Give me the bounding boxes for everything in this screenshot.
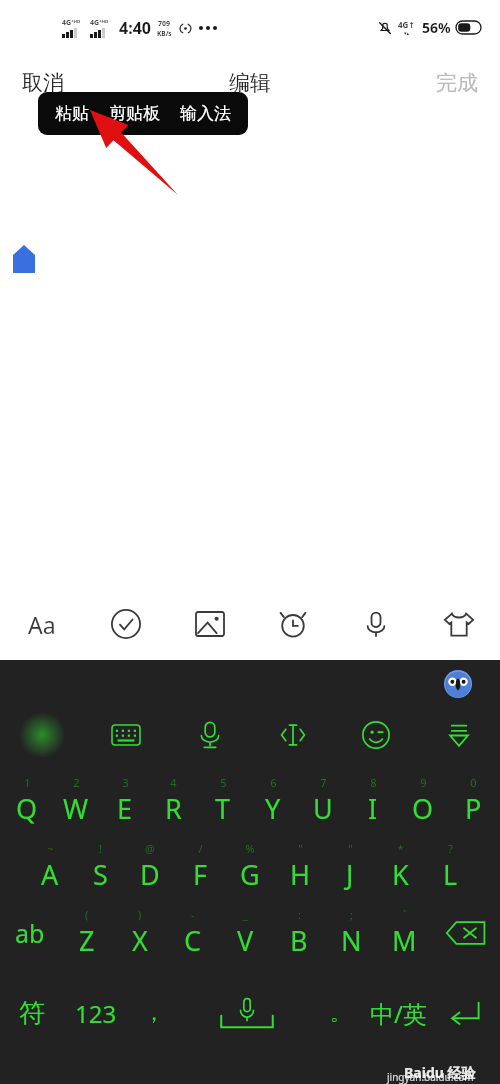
staticText: 2 xyxy=(73,775,80,790)
staticText: Q xyxy=(16,790,38,827)
staticText: Aa xyxy=(28,609,56,640)
button[interactable]: Checklist xyxy=(84,588,168,660)
button[interactable]: ， xyxy=(128,966,180,1060)
staticText: 3 xyxy=(122,775,129,790)
button[interactable]: 中/英 xyxy=(366,966,430,1060)
button[interactable]: 123 xyxy=(64,966,128,1060)
button[interactable]: 输入法 xyxy=(177,103,234,124)
button[interactable]: 3 xyxy=(100,768,149,834)
button[interactable]: 。 xyxy=(314,966,366,1060)
button[interactable]: Text format xyxy=(0,588,84,660)
button[interactable]: ( xyxy=(60,900,113,966)
staticText: 取消 xyxy=(22,70,64,96)
staticText: X xyxy=(132,922,148,959)
button[interactable]: ) xyxy=(113,900,166,966)
button[interactable]: * xyxy=(375,834,425,900)
staticText: : xyxy=(298,907,301,922)
button[interactable]: % xyxy=(225,834,275,900)
staticText: 4 xyxy=(170,775,177,790)
staticText: S xyxy=(93,856,108,893)
staticText: Y xyxy=(265,790,281,827)
staticText: U xyxy=(313,790,333,827)
staticText: L xyxy=(443,856,458,893)
button[interactable]: 9 xyxy=(398,768,448,834)
staticText: D xyxy=(140,856,160,893)
button[interactable]: Space xyxy=(180,966,314,1060)
staticText: ~ xyxy=(47,841,54,856)
button[interactable]: 2 xyxy=(51,768,100,834)
staticText: V xyxy=(237,922,254,959)
staticText: P xyxy=(465,790,482,827)
button[interactable]: 剪贴板 xyxy=(106,103,163,124)
button[interactable]: - xyxy=(166,900,219,966)
staticText: T xyxy=(215,790,231,827)
staticText: _ xyxy=(243,907,248,922)
button[interactable]: Baidu input xyxy=(0,702,84,768)
button[interactable]: 粘贴 xyxy=(52,103,92,124)
staticText: O xyxy=(412,790,434,827)
staticText: / xyxy=(198,841,203,856)
staticText: 7 xyxy=(320,775,327,790)
button[interactable]: 4 xyxy=(149,768,198,834)
button[interactable]: 6 xyxy=(248,768,298,834)
button[interactable]: 5 xyxy=(198,768,248,834)
button[interactable]: ! xyxy=(75,834,125,900)
button[interactable]: @ xyxy=(125,834,175,900)
button[interactable]: " xyxy=(325,834,375,900)
button[interactable]: 完成 xyxy=(422,64,500,102)
button[interactable]: : xyxy=(272,900,325,966)
staticText: 0 xyxy=(470,775,477,790)
button[interactable]: ? xyxy=(425,834,475,900)
button[interactable]: 7 xyxy=(298,768,348,834)
staticText: 中/英 xyxy=(370,997,427,1030)
button[interactable]: Emoji xyxy=(334,702,417,768)
staticText: E xyxy=(117,790,133,827)
staticText: ? xyxy=(448,841,453,856)
button[interactable]: 0 xyxy=(448,768,498,834)
button[interactable]: ab xyxy=(0,900,60,966)
staticText: B xyxy=(290,922,308,959)
staticText: 4G⁺ᴴᴰ xyxy=(62,18,81,28)
staticText: 709 xyxy=(158,19,171,29)
staticText: ， xyxy=(143,999,165,1027)
staticText: R xyxy=(165,790,182,827)
staticText: F xyxy=(193,856,208,893)
button[interactable]: 符 xyxy=(0,966,64,1060)
button[interactable]: / xyxy=(175,834,225,900)
staticText: 剪贴板 xyxy=(109,103,160,124)
button[interactable]: Image xyxy=(168,588,251,660)
button[interactable]: " xyxy=(275,834,325,900)
button[interactable]: ~ xyxy=(25,834,75,900)
staticText: @ xyxy=(145,841,155,856)
staticText: C xyxy=(184,922,202,959)
button[interactable]: Voice xyxy=(334,588,417,660)
staticText: 4G⁺ᴴᴰ xyxy=(90,18,109,28)
staticText: Baidu 经验 xyxy=(404,1063,476,1082)
button[interactable]: Backspace xyxy=(431,900,500,966)
button[interactable]: Reminder xyxy=(251,588,334,660)
button[interactable]: Cursor xyxy=(251,702,334,768)
button[interactable]: Enter xyxy=(430,966,500,1060)
staticText: 编辑 xyxy=(229,70,271,96)
button[interactable]: ; xyxy=(325,900,378,966)
staticText: M xyxy=(392,922,417,959)
staticText: 56% xyxy=(422,18,451,37)
button[interactable]: Assistant avatar xyxy=(444,670,472,698)
button[interactable]: 1 xyxy=(2,768,51,834)
button[interactable]: 8 xyxy=(348,768,398,834)
button[interactable]: Style xyxy=(417,588,500,660)
staticText: 6 xyxy=(270,775,277,790)
button[interactable]: Hide keyboard xyxy=(417,702,500,768)
button[interactable]: Voice input xyxy=(168,702,251,768)
button[interactable]: 取消 xyxy=(0,64,78,102)
staticText: K xyxy=(392,856,409,893)
staticText: KB/s xyxy=(157,29,172,38)
staticText: 输入法 xyxy=(180,103,231,124)
staticText: 1 xyxy=(24,775,31,790)
button[interactable]: ` xyxy=(378,900,431,966)
staticText: H xyxy=(290,856,311,893)
staticText: Z xyxy=(79,922,95,959)
staticText: 符 xyxy=(19,997,45,1030)
button[interactable]: Keyboard xyxy=(84,702,168,768)
button[interactable]: _ xyxy=(219,900,272,966)
